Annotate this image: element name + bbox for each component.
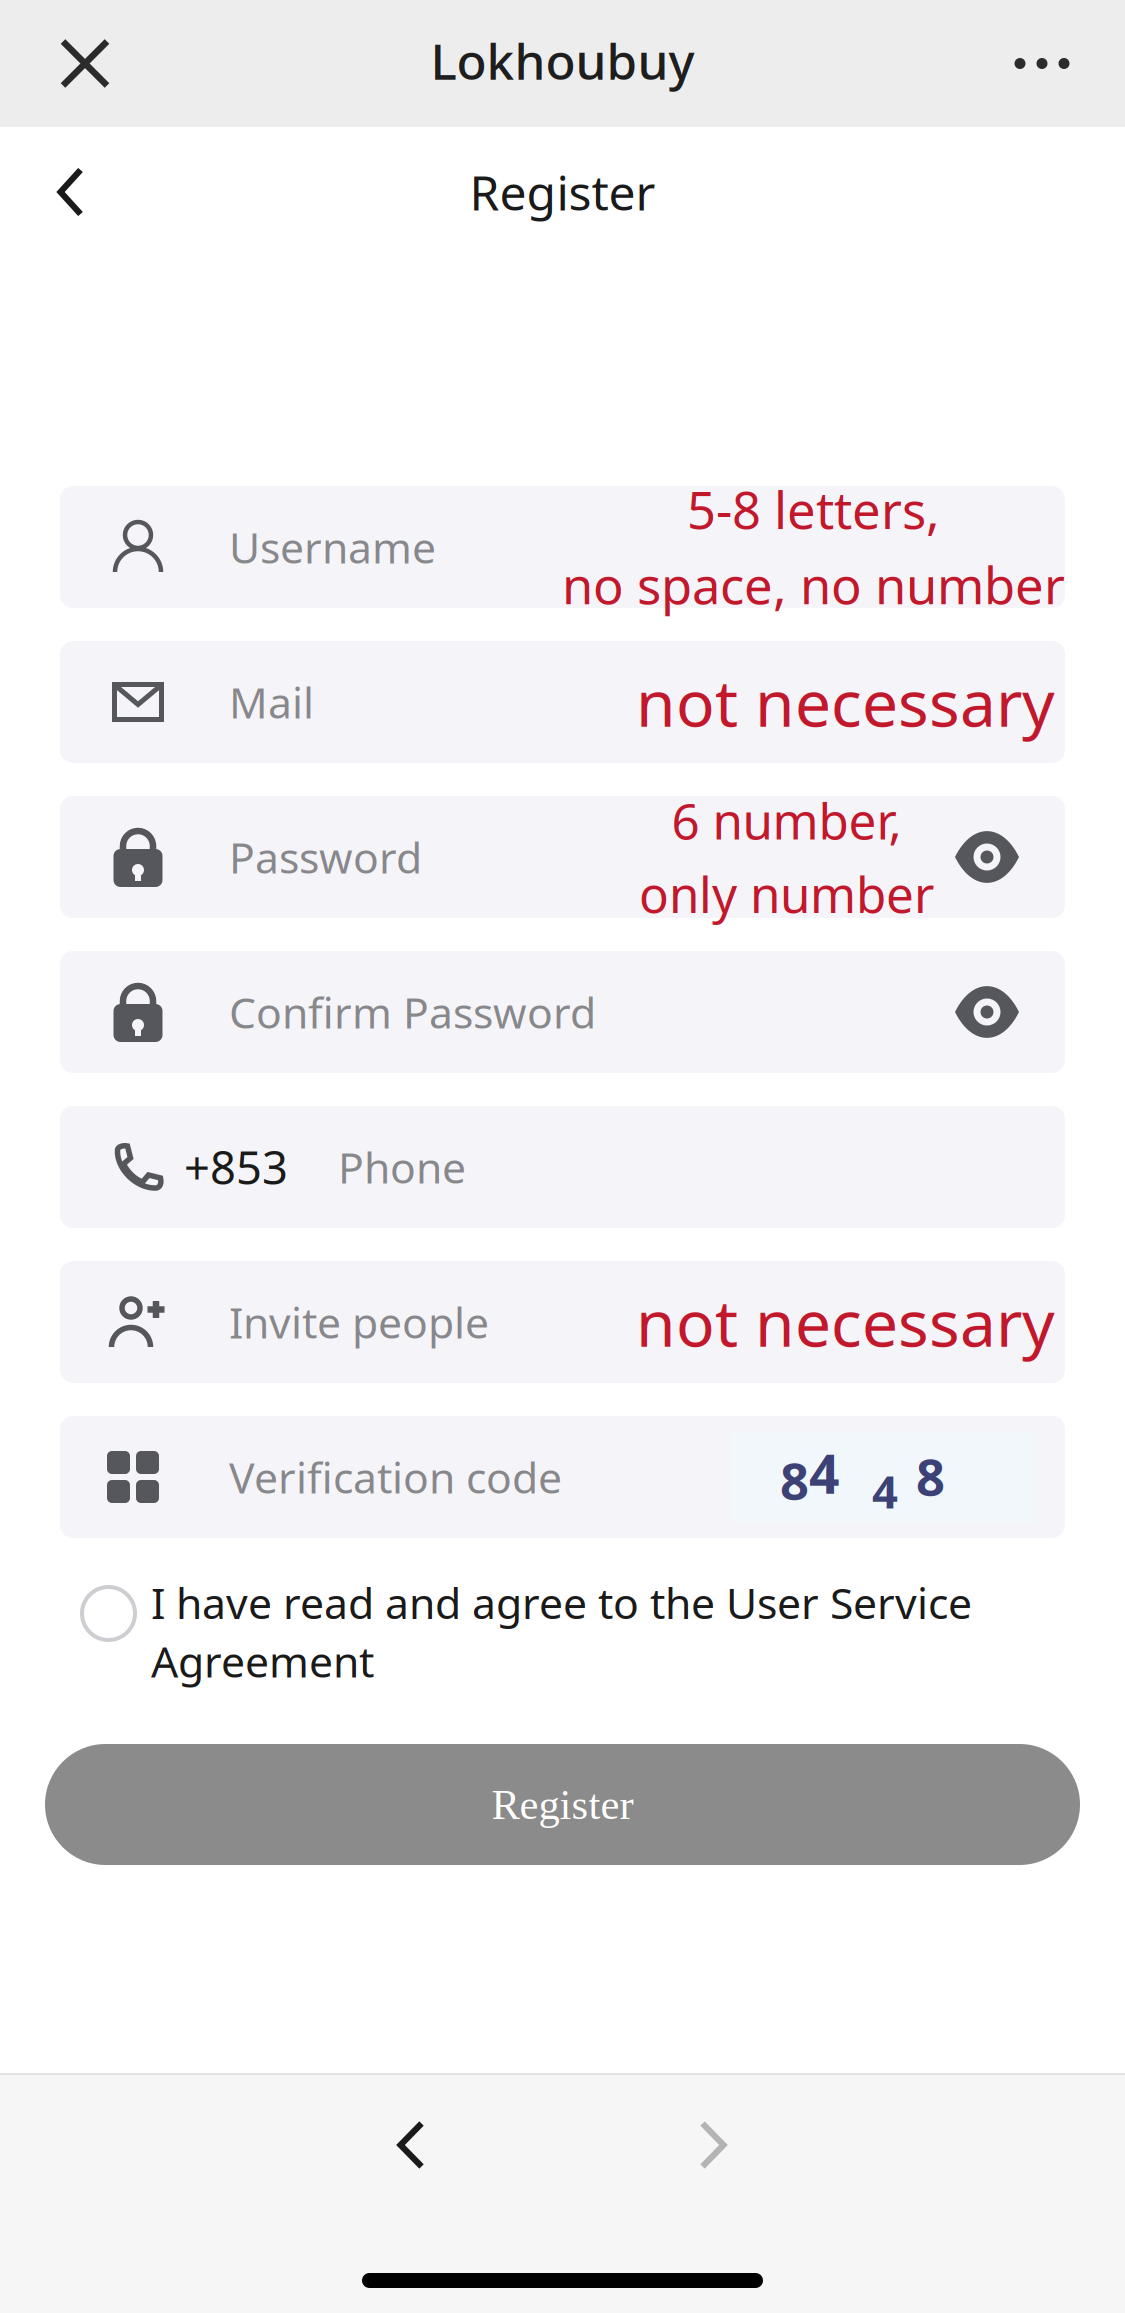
staticText: not necessary bbox=[636, 1279, 1055, 1364]
button[interactable]: Refresh verification code bbox=[732, 1416, 1065, 1538]
staticText: Username bbox=[229, 519, 436, 575]
button[interactable]: Go back bbox=[331, 2090, 491, 2200]
staticText: no space, no number bbox=[562, 551, 1065, 618]
button[interactable]: More options bbox=[959, 0, 1125, 127]
button[interactable]: Close bbox=[0, 0, 170, 127]
staticText: not necessary bbox=[636, 659, 1055, 744]
staticText: I have read and agree to the User Servic… bbox=[151, 1574, 972, 1631]
button[interactable]: Back bbox=[0, 127, 141, 257]
staticText: Invite people bbox=[229, 1294, 489, 1350]
staticText: 4 bbox=[809, 1438, 840, 1508]
button[interactable]: Go forward bbox=[633, 2090, 793, 2200]
staticText: 8 bbox=[916, 1442, 945, 1510]
staticText: Register bbox=[469, 160, 655, 224]
staticText: Password bbox=[229, 829, 422, 885]
staticText: Confirm Password bbox=[229, 984, 596, 1040]
staticText: +853 bbox=[184, 1137, 288, 1197]
staticText: 5-8 letters, bbox=[687, 476, 940, 543]
staticText: Register bbox=[491, 1781, 633, 1828]
staticText: Verification code bbox=[229, 1449, 562, 1505]
staticText: 6 number, bbox=[671, 787, 901, 853]
staticText: only number bbox=[639, 861, 934, 926]
staticText: 4 bbox=[872, 1461, 898, 1521]
button[interactable]: Show confirm password bbox=[955, 951, 1065, 1073]
staticText: Lokhoubuy bbox=[430, 28, 694, 93]
staticText: Agreement bbox=[151, 1633, 374, 1689]
staticText: Phone bbox=[338, 1139, 466, 1195]
button[interactable]: Show password bbox=[955, 796, 1065, 918]
staticText: Mail bbox=[229, 674, 314, 730]
staticText: 8 bbox=[780, 1446, 809, 1514]
button[interactable]: I have read and agree to the User Servic… bbox=[45, 1538, 1080, 1704]
button[interactable]: Register bbox=[45, 1704, 1080, 1865]
